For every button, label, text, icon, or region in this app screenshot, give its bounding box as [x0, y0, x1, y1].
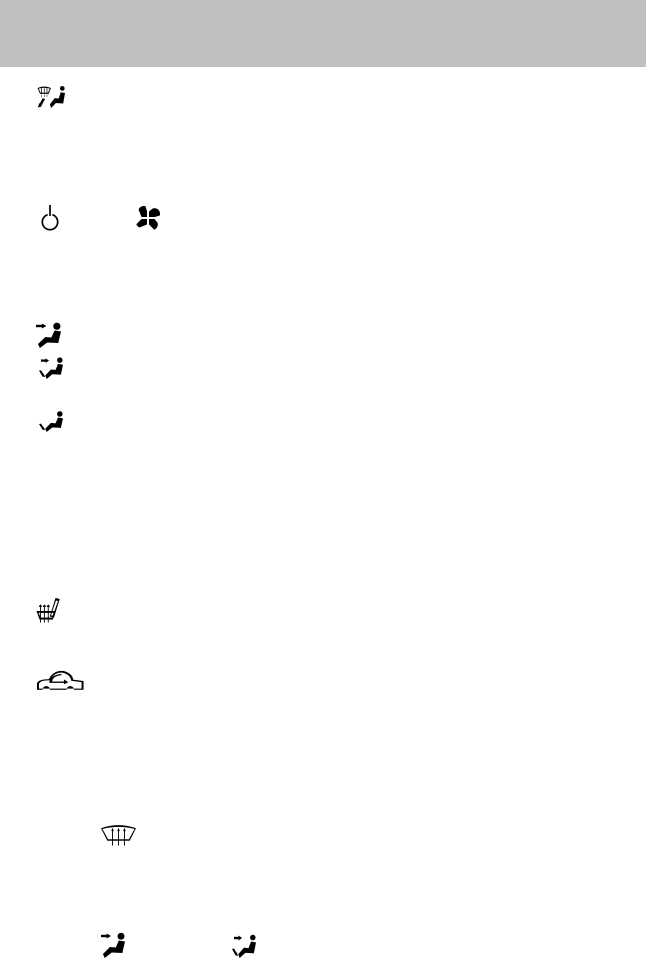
button[interactable]: Face and feet airflow	[0, 0, 646, 960]
button[interactable]: Heated seat	[0, 0, 646, 960]
button[interactable]: Driver airflow	[0, 0, 646, 960]
button[interactable]: Windshield defrost	[0, 0, 646, 960]
button[interactable]: Face airflow	[0, 0, 646, 960]
button[interactable]: Fan speed	[0, 0, 646, 960]
button[interactable]: Feet airflow	[0, 0, 646, 960]
button[interactable]: Air recirculation	[0, 0, 646, 960]
button[interactable]: Passenger airflow	[0, 0, 646, 960]
button[interactable]: Rear defroster	[0, 0, 646, 960]
button[interactable]: Power	[0, 0, 646, 960]
